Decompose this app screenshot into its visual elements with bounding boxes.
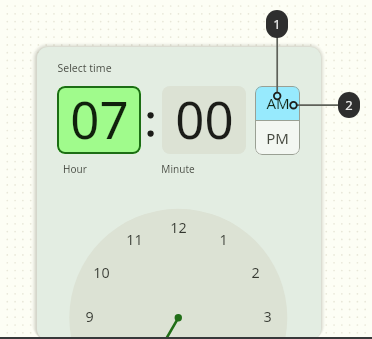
- staticText: 2: [251, 263, 260, 282]
- staticText: PM: [266, 128, 289, 148]
- button[interactable]: 12: [163, 216, 193, 238]
- button[interactable]: 9: [74, 305, 104, 327]
- button[interactable]: Annotation 1: [266, 10, 288, 38]
- staticText: 3: [263, 307, 272, 326]
- staticText: 1: [219, 230, 228, 249]
- staticText: Select time: [57, 61, 112, 75]
- button[interactable]: PM: [255, 121, 300, 155]
- staticText: 00: [175, 86, 234, 152]
- staticText: 12: [170, 218, 187, 237]
- button[interactable]: AM: [255, 86, 300, 120]
- button[interactable]: 00: [162, 86, 246, 154]
- button[interactable]: 3: [252, 305, 282, 327]
- button[interactable]: Annotation 2: [338, 92, 360, 118]
- button[interactable]: 2: [240, 261, 270, 283]
- staticText: Hour: [63, 162, 87, 176]
- staticText: 9: [85, 307, 94, 326]
- staticText: Minute: [161, 162, 195, 176]
- staticText: AM: [266, 93, 290, 113]
- staticText: 10: [93, 263, 110, 282]
- staticText: 07: [70, 86, 129, 152]
- button[interactable]: 10: [86, 261, 116, 283]
- button[interactable]: 11: [119, 228, 149, 250]
- staticText: 11: [126, 230, 143, 249]
- button[interactable]: 1: [208, 228, 238, 250]
- button[interactable]: 07: [57, 86, 141, 154]
- staticText: 1: [273, 15, 281, 33]
- staticText: 2: [345, 96, 353, 114]
